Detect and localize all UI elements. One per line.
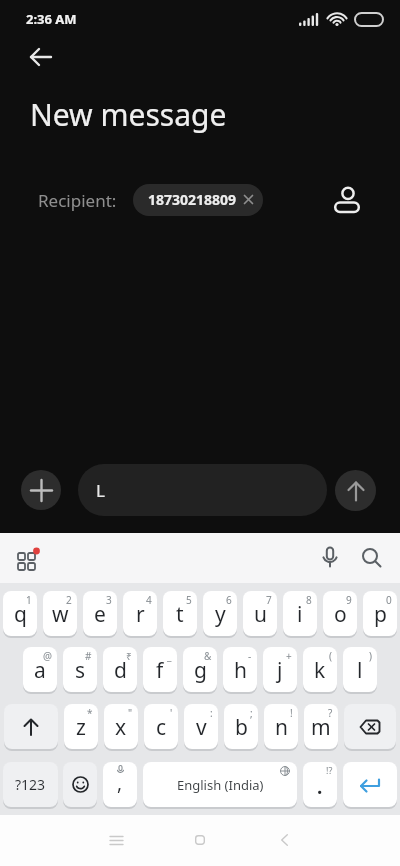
button[interactable]	[63, 762, 97, 807]
staticText: 7	[266, 593, 272, 607]
staticText: m	[311, 713, 331, 742]
staticText: 6	[226, 593, 232, 607]
button[interactable]	[312, 540, 348, 576]
button[interactable]	[354, 540, 390, 576]
button[interactable]: v	[184, 704, 218, 749]
staticText: .	[317, 774, 323, 800]
staticText: 8	[306, 593, 312, 607]
staticText: '	[170, 706, 173, 720]
staticText: e	[94, 600, 106, 629]
staticText: b	[235, 713, 248, 742]
button[interactable]	[328, 181, 366, 219]
button[interactable]	[264, 820, 304, 860]
button[interactable]: n	[264, 704, 298, 749]
staticText: L	[96, 479, 105, 502]
staticText: 5	[186, 593, 192, 607]
button[interactable]: k	[303, 647, 337, 692]
staticText: f	[156, 656, 164, 685]
staticText: y	[215, 600, 226, 629]
staticText: i	[297, 600, 303, 629]
staticText: ?123	[15, 775, 46, 794]
button[interactable]: h	[223, 647, 257, 692]
staticText: *	[87, 706, 93, 720]
button[interactable]: z	[64, 704, 98, 749]
staticText: k	[314, 656, 326, 685]
staticText: (	[329, 649, 332, 663]
staticText: 2	[66, 593, 72, 607]
staticText: w	[52, 600, 69, 629]
staticText: o	[334, 600, 347, 629]
staticText: )	[369, 649, 372, 663]
button[interactable]	[21, 470, 61, 510]
staticText: #	[85, 649, 92, 663]
button[interactable]: q	[3, 591, 37, 636]
button[interactable]: c	[144, 704, 178, 749]
button[interactable]: e	[83, 591, 117, 636]
staticText: 4	[146, 593, 152, 607]
button[interactable]: m	[304, 704, 338, 749]
button[interactable]: a	[23, 647, 57, 692]
staticText: z	[76, 713, 86, 742]
staticText: _	[167, 649, 172, 663]
staticText: 2:36 AM	[26, 10, 77, 28]
staticText: c	[156, 713, 167, 742]
staticText: !?	[326, 764, 333, 776]
staticText: &	[204, 649, 212, 663]
button[interactable]: .	[303, 762, 337, 807]
staticText: New message	[30, 94, 227, 134]
button[interactable]: o	[323, 591, 357, 636]
staticText: s	[75, 656, 86, 685]
button[interactable]: r	[123, 591, 157, 636]
button[interactable]	[4, 704, 58, 749]
staticText: 18730218809	[148, 190, 237, 209]
button[interactable]	[22, 38, 60, 76]
staticText: q	[14, 600, 27, 629]
button[interactable]: ?123	[3, 762, 58, 807]
button[interactable]	[344, 704, 396, 749]
button[interactable]	[180, 820, 220, 860]
button[interactable]: p	[363, 591, 397, 636]
button[interactable]	[335, 470, 376, 511]
button[interactable]: x	[104, 704, 138, 749]
button[interactable]: l	[343, 647, 377, 692]
button[interactable]: s	[63, 647, 97, 692]
staticText: :	[210, 706, 213, 720]
button[interactable]: u	[243, 591, 277, 636]
button[interactable]: f	[143, 647, 177, 692]
staticText: @	[43, 649, 52, 663]
staticText: Recipient:	[38, 189, 117, 212]
button[interactable]: 18730218809	[133, 184, 263, 216]
button[interactable]	[343, 762, 397, 807]
button[interactable]: English (India)	[143, 762, 297, 807]
staticText: a	[34, 656, 46, 685]
button[interactable]: i	[283, 591, 317, 636]
staticText: u	[254, 600, 267, 629]
button[interactable]: g	[183, 647, 217, 692]
staticText: English (India)	[177, 776, 264, 794]
staticText: 0	[386, 593, 392, 607]
button[interactable]: t	[163, 591, 197, 636]
button[interactable]	[96, 820, 136, 860]
staticText: ?	[328, 706, 333, 720]
staticText: 9	[346, 593, 352, 607]
staticText: l	[357, 656, 363, 685]
staticText: -	[248, 649, 252, 663]
button[interactable]	[10, 541, 44, 575]
button[interactable]: ,	[103, 762, 137, 807]
button[interactable]: d	[103, 647, 137, 692]
staticText: +	[286, 649, 292, 663]
button[interactable]: w	[43, 591, 77, 636]
staticText: ;	[250, 706, 253, 720]
button[interactable]: y	[203, 591, 237, 636]
button[interactable]: b	[224, 704, 258, 749]
staticText: 1	[26, 593, 32, 607]
staticText: ₹	[126, 649, 132, 663]
staticText: v	[196, 713, 207, 742]
staticText: h	[234, 656, 247, 685]
button[interactable]: j	[263, 647, 297, 692]
button[interactable]: L	[78, 464, 327, 516]
staticText: "	[128, 706, 133, 720]
staticText: ,	[117, 770, 123, 796]
staticText: d	[114, 656, 127, 685]
staticText: p	[374, 600, 387, 629]
